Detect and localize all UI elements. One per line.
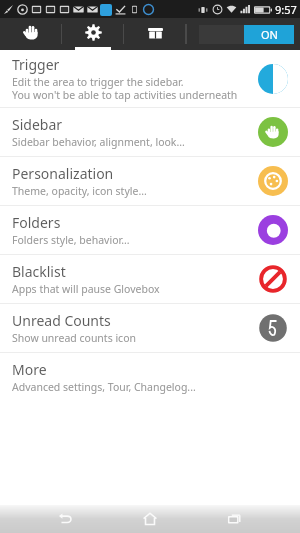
staticText: Sidebar xyxy=(12,115,63,134)
button[interactable]: Recents xyxy=(215,505,255,533)
staticText: Theme, opacity, icon style... xyxy=(12,184,147,198)
staticText: Folders xyxy=(12,213,61,232)
staticText: Personalization xyxy=(12,164,114,183)
button[interactable]: ON xyxy=(244,25,294,44)
button[interactable]: Folders xyxy=(0,206,300,254)
staticText: Advanced settings, Tour, Changelog... xyxy=(12,380,196,394)
staticText: Blacklist xyxy=(12,262,66,281)
button[interactable]: Gestures xyxy=(0,18,62,50)
button[interactable]: Personalization xyxy=(0,157,300,205)
staticText: 9:57 xyxy=(275,2,297,17)
staticText: Show unread counts icon xyxy=(12,331,136,345)
button[interactable]: Store xyxy=(124,18,186,50)
staticText: Sidebar behavior, alignment, look... xyxy=(12,135,185,149)
staticText: ON xyxy=(261,27,278,42)
staticText: More xyxy=(12,360,47,379)
button[interactable]: More xyxy=(0,353,300,401)
staticText: Apps that will pause Glovebox xyxy=(12,282,160,296)
button[interactable]: Settings xyxy=(62,18,124,50)
button[interactable]: Unread Counts xyxy=(0,304,300,352)
button[interactable]: Home xyxy=(130,505,170,533)
button[interactable]: Blacklist xyxy=(0,255,300,303)
staticText: Edit the area to trigger the sidebar. Yo… xyxy=(12,75,238,102)
button[interactable]: Trigger xyxy=(0,50,300,107)
staticText: Trigger xyxy=(12,55,60,74)
button[interactable]: Back xyxy=(45,505,85,533)
button[interactable]: Sidebar xyxy=(0,108,300,156)
staticText: Folders style, behavior... xyxy=(12,233,130,247)
staticText: Unread Counts xyxy=(12,311,111,330)
